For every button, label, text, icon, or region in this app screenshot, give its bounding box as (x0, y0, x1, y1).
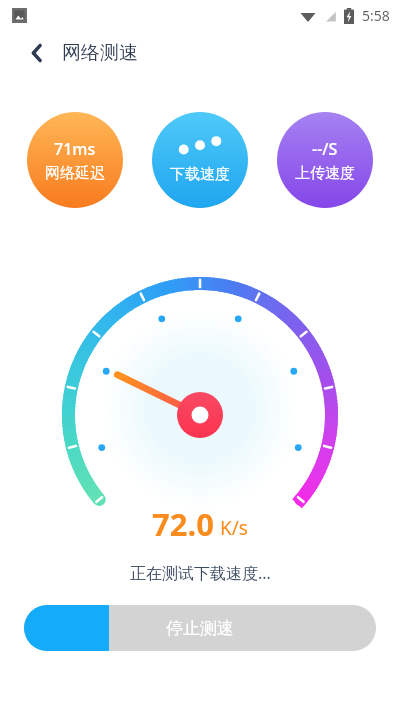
staticText: 网络延迟 (45, 164, 105, 183)
staticText: --/S (312, 138, 338, 160)
button[interactable]: --/S (277, 112, 373, 208)
staticText: 72.0 (152, 503, 214, 545)
button[interactable]: Back (20, 36, 54, 70)
staticText: K/s (220, 515, 248, 541)
button[interactable]: 下载速度 (152, 112, 248, 208)
staticText: 停止测速 (166, 618, 234, 639)
staticText: 正在测试下载速度... (130, 562, 271, 584)
button[interactable]: 71ms (27, 112, 123, 208)
staticText: 71ms (54, 138, 96, 160)
staticText: 网络测速 (62, 41, 138, 65)
staticText: 上传速度 (295, 164, 355, 183)
button[interactable]: 停止测速 (24, 605, 376, 651)
staticText: 下载速度 (170, 165, 230, 184)
staticText: 5:58 (362, 6, 390, 25)
